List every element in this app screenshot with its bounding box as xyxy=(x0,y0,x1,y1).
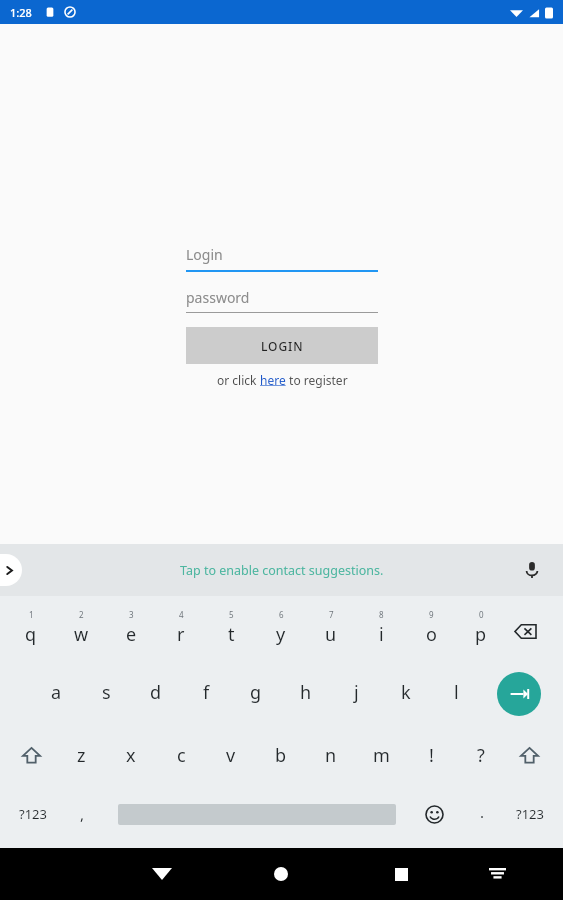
button[interactable]: ?123 xyxy=(6,792,60,836)
staticText: 0 xyxy=(479,609,484,620)
button[interactable]: ? xyxy=(457,729,505,781)
button[interactable]: Home xyxy=(256,848,306,900)
button[interactable]: 9 xyxy=(407,600,455,656)
staticText: here xyxy=(260,372,286,388)
button[interactable]: Switch keyboard xyxy=(472,848,522,900)
button[interactable]: x xyxy=(107,729,155,781)
staticText: ? xyxy=(477,743,485,768)
staticText: o xyxy=(426,622,437,647)
staticText: i xyxy=(379,622,384,647)
staticText: u xyxy=(325,622,337,647)
staticText: h xyxy=(300,680,312,705)
staticText: Tap to enable contact suggestions. xyxy=(180,562,384,579)
button[interactable]: 6 xyxy=(257,600,305,656)
button[interactable]: here xyxy=(260,372,286,388)
staticText: l xyxy=(454,680,459,705)
staticText: s xyxy=(102,680,111,705)
button[interactable]: 0 xyxy=(457,600,505,656)
button[interactable]: Tap to enable contact suggestions. xyxy=(180,562,384,579)
button[interactable]: c xyxy=(157,729,205,781)
button[interactable]: Shift xyxy=(508,735,550,775)
button[interactable]: 8 xyxy=(357,600,405,656)
button[interactable]: . xyxy=(462,792,502,832)
button[interactable]: , xyxy=(60,792,104,836)
staticText: r xyxy=(177,622,185,647)
button[interactable]: k xyxy=(382,666,430,718)
staticText: ?123 xyxy=(19,805,47,823)
button[interactable]: Shift xyxy=(10,735,52,775)
button[interactable]: Enter xyxy=(497,672,541,716)
button[interactable]: 2 xyxy=(57,600,105,656)
staticText: 7 xyxy=(329,609,334,620)
staticText: 1 xyxy=(29,609,34,620)
button[interactable]: Expand suggestions xyxy=(0,554,22,586)
staticText: ! xyxy=(429,743,434,768)
button[interactable]: v xyxy=(207,729,255,781)
staticText: 3 xyxy=(129,609,134,620)
staticText: b xyxy=(275,743,287,768)
staticText: password xyxy=(186,288,250,307)
staticText: 1:28 xyxy=(10,5,32,20)
button[interactable]: 5 xyxy=(207,600,255,656)
staticText: k xyxy=(401,680,411,705)
staticText: Login xyxy=(186,245,223,264)
button[interactable]: 3 xyxy=(107,600,155,656)
button[interactable]: password xyxy=(186,282,378,312)
button[interactable]: j xyxy=(332,666,380,718)
staticText: w xyxy=(74,622,89,647)
button[interactable]: Emoji xyxy=(412,792,456,836)
staticText: e xyxy=(126,622,137,647)
staticText: t xyxy=(228,622,235,647)
button[interactable]: ?123 xyxy=(503,792,557,836)
staticText: j xyxy=(354,680,359,705)
staticText: 2 xyxy=(79,609,84,620)
button[interactable]: g xyxy=(232,666,280,718)
staticText: ?123 xyxy=(516,805,544,823)
staticText: 6 xyxy=(279,609,284,620)
button[interactable]: LOGIN xyxy=(186,327,378,364)
staticText: p xyxy=(475,622,487,647)
button[interactable]: s xyxy=(82,666,130,718)
staticText: d xyxy=(150,680,162,705)
button[interactable]: f xyxy=(182,666,230,718)
staticText: g xyxy=(250,680,262,705)
staticText: 5 xyxy=(229,609,234,620)
staticText: LOGIN xyxy=(261,338,304,354)
button[interactable]: h xyxy=(282,666,330,718)
button[interactable]: ! xyxy=(407,729,455,781)
staticText: n xyxy=(325,743,337,768)
button[interactable]: 7 xyxy=(307,600,355,656)
button[interactable]: n xyxy=(307,729,355,781)
staticText: , xyxy=(80,804,85,824)
button[interactable]: l xyxy=(432,666,480,718)
staticText: z xyxy=(77,743,86,768)
button[interactable]: Backspace xyxy=(508,614,542,648)
staticText: f xyxy=(203,680,210,705)
staticText: . xyxy=(480,802,485,822)
button[interactable]: 1 xyxy=(7,600,55,656)
button[interactable]: Recent apps xyxy=(376,848,426,900)
button[interactable]: Voice input xyxy=(523,561,541,579)
staticText: or click xyxy=(217,372,260,388)
staticText: q xyxy=(25,622,37,647)
button[interactable]: Back xyxy=(137,848,187,900)
button[interactable]: z xyxy=(57,729,105,781)
button[interactable]: b xyxy=(257,729,305,781)
staticText: to register xyxy=(286,372,348,388)
staticText: y xyxy=(276,622,286,647)
button[interactable]: m xyxy=(357,729,405,781)
staticText: c xyxy=(177,743,186,768)
staticText: 9 xyxy=(429,609,434,620)
staticText: x xyxy=(126,743,136,768)
button[interactable]: Login xyxy=(186,238,378,270)
staticText: 4 xyxy=(179,609,184,620)
staticText: v xyxy=(226,743,236,768)
staticText: a xyxy=(51,680,62,705)
button[interactable]: 4 xyxy=(157,600,205,656)
staticText: 8 xyxy=(379,609,384,620)
button[interactable]: d xyxy=(132,666,180,718)
staticText: m xyxy=(373,743,390,768)
button[interactable]: a xyxy=(32,666,80,718)
